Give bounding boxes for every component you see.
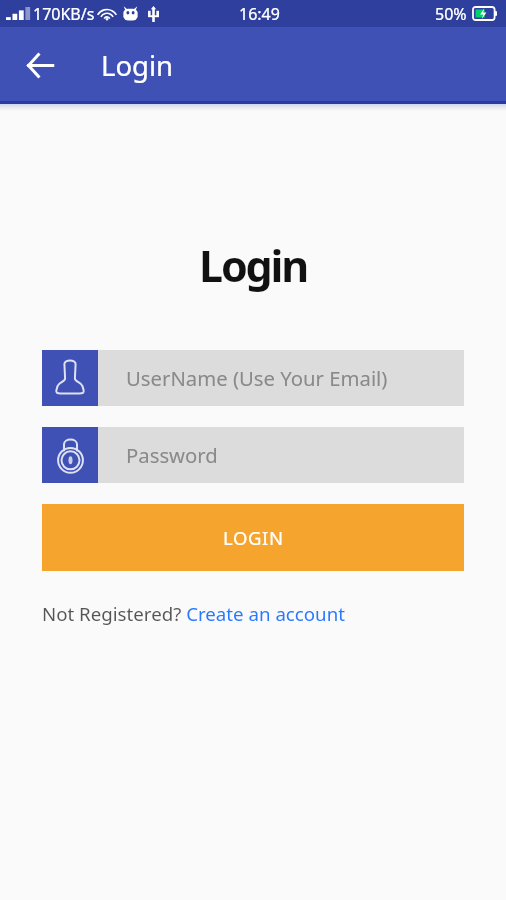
staticText: Password <box>126 441 218 469</box>
button[interactable]: Password <box>42 427 464 483</box>
staticText: UserName (Use Your Email) <box>126 364 388 392</box>
button[interactable]: UserName (Use Your Email) <box>42 350 464 406</box>
staticText: Login <box>101 47 174 84</box>
staticText: LOGIN <box>223 525 284 550</box>
button[interactable]: Back <box>0 37 80 93</box>
staticText: Login <box>42 236 464 295</box>
staticText: 16:49 <box>239 3 280 25</box>
button[interactable]: Not Registered? Create an account <box>42 601 345 626</box>
staticText: Not Registered? Create an account <box>42 601 345 626</box>
staticText: 170KB/s <box>33 3 95 25</box>
button[interactable]: LOGIN <box>42 504 464 571</box>
staticText: 50% <box>435 3 467 25</box>
